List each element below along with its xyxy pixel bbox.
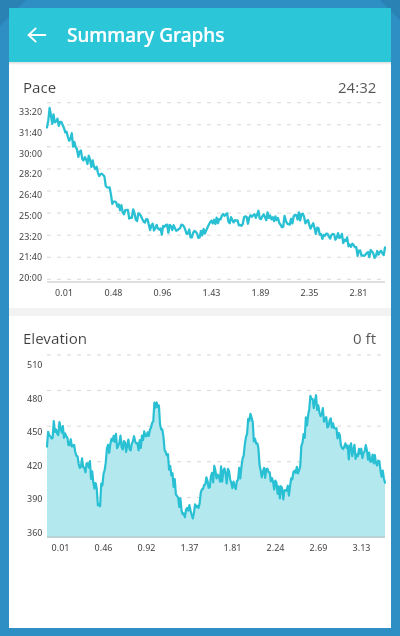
staticText: 480: [27, 392, 43, 404]
staticText: 0.01: [39, 286, 89, 298]
staticText: 30:00: [19, 147, 43, 159]
staticText: 23:20: [19, 230, 43, 242]
staticText: 360: [27, 526, 43, 538]
staticText: 0.92: [125, 541, 168, 553]
staticText: 2.81: [334, 286, 383, 298]
staticText: 420: [27, 459, 43, 471]
staticText: 24:32: [338, 77, 377, 97]
staticText: 0.01: [39, 541, 82, 553]
staticText: Pace: [23, 77, 57, 97]
staticText: 390: [27, 492, 43, 504]
staticText: 3.13: [340, 541, 383, 553]
staticText: Summary Graphs: [67, 22, 225, 48]
staticText: 31:40: [19, 126, 43, 138]
staticText: 450: [27, 425, 43, 437]
staticText: 0.46: [82, 541, 125, 553]
staticText: 21:40: [19, 250, 43, 262]
staticText: 1.81: [211, 541, 254, 553]
staticText: 2.35: [285, 286, 334, 298]
staticText: 25:00: [19, 209, 43, 221]
staticText: 0.48: [89, 286, 138, 298]
staticText: 510: [27, 358, 43, 370]
staticText: 1.37: [168, 541, 211, 553]
staticText: 0 ft: [353, 328, 377, 348]
staticText: 26:40: [19, 188, 43, 200]
staticText: Elevation: [23, 328, 88, 348]
staticText: 2.24: [254, 541, 297, 553]
staticText: 33:20: [19, 105, 43, 117]
button[interactable]: Back: [17, 15, 57, 55]
staticText: 1.89: [236, 286, 285, 298]
staticText: 20:00: [19, 271, 43, 283]
staticText: 28:20: [19, 167, 43, 179]
staticText: 0.96: [138, 286, 187, 298]
staticText: 1.43: [187, 286, 236, 298]
staticText: 2.69: [297, 541, 340, 553]
